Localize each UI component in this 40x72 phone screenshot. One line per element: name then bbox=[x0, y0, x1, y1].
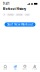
staticText: Home bbox=[3, 68, 7, 70]
button[interactable]: History bbox=[20, 64, 29, 70]
button[interactable]: Stats bbox=[11, 64, 20, 70]
staticText: Stats bbox=[14, 68, 17, 70]
staticText: 9:41 bbox=[3, 2, 10, 5]
button[interactable]: Profile bbox=[30, 64, 39, 70]
button[interactable]: Running bbox=[6, 13, 14, 16]
staticText: Start New Workout bbox=[7, 23, 33, 26]
staticText: All bbox=[4, 14, 5, 16]
button[interactable]: Home bbox=[1, 64, 10, 70]
button[interactable]: Strength bbox=[15, 13, 23, 16]
staticText: Running bbox=[7, 14, 13, 16]
staticText: Yoga bbox=[25, 14, 29, 16]
staticText: History bbox=[22, 68, 27, 70]
button[interactable]: Yoga bbox=[24, 13, 30, 16]
staticText: Strength bbox=[16, 14, 22, 16]
button[interactable]: Start New Workout bbox=[4, 22, 35, 27]
button[interactable]: All bbox=[3, 13, 6, 16]
staticText: Workout History bbox=[3, 7, 27, 11]
staticText: Profile bbox=[32, 68, 37, 70]
